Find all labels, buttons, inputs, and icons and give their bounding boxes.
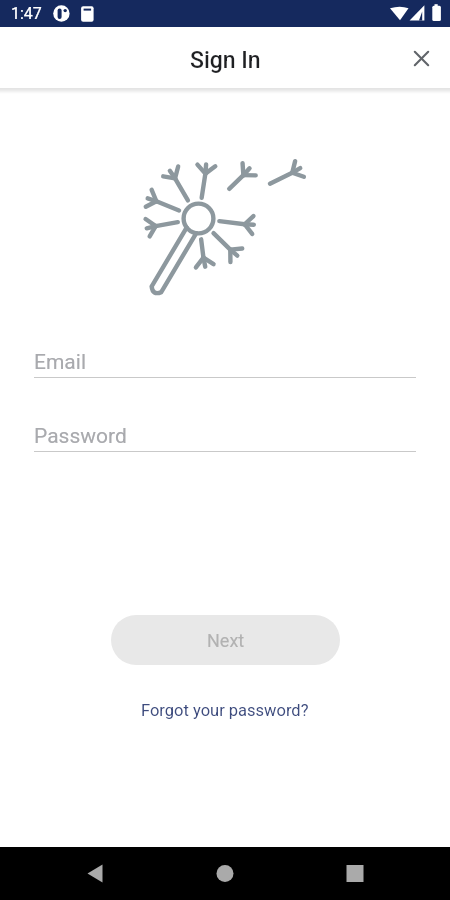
staticText: Email: [34, 350, 86, 375]
staticText: Password: [34, 424, 127, 449]
staticText: Forgot your password?: [141, 701, 309, 720]
button[interactable]: Forgot your password?: [133, 697, 317, 724]
staticText: 1:47: [11, 4, 42, 23]
staticText: Sign In: [190, 47, 261, 74]
button[interactable]: Close: [403, 40, 439, 76]
button[interactable]: Next: [111, 615, 340, 665]
staticText: Next: [207, 630, 245, 651]
